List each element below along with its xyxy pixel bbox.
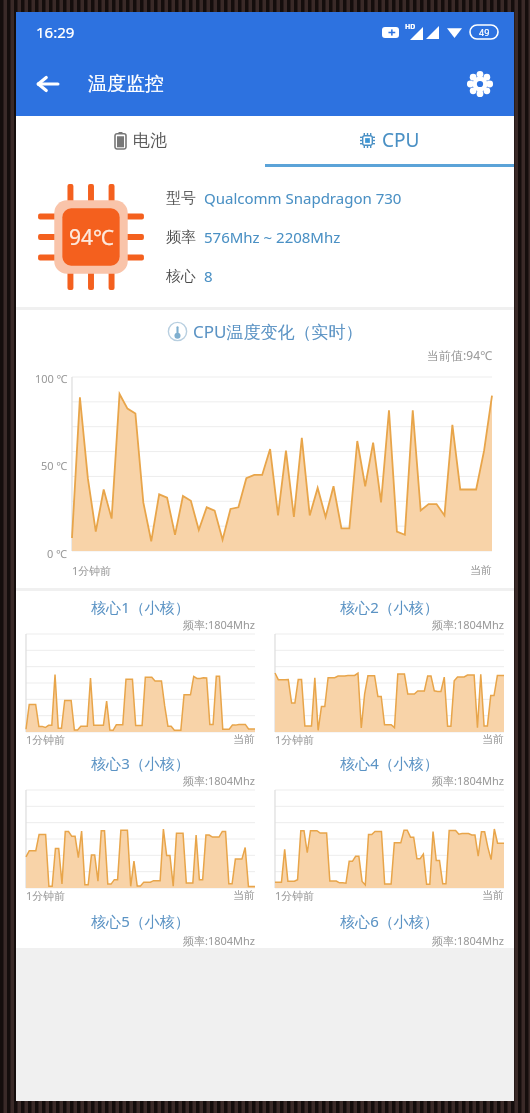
staticText: 当前 — [482, 732, 504, 746]
staticText: 频率:1804Mhz — [275, 773, 504, 788]
staticText: 电池 — [133, 130, 167, 151]
staticText: 频率:1804Mhz — [275, 617, 504, 632]
staticText: 温度监控 — [88, 72, 164, 96]
staticText: 当前 — [233, 732, 255, 746]
staticText: 核心4（小核） — [275, 753, 504, 773]
staticText: 16:29 — [36, 22, 75, 42]
button[interactable]: Settings — [456, 60, 504, 108]
staticText: 频率:1804Mhz — [26, 933, 255, 948]
staticText: 1分钟前 — [26, 888, 66, 903]
staticText: 频率:1804Mhz — [26, 773, 255, 788]
staticText: 1分钟前 — [26, 732, 66, 747]
staticText: 50 ℃ — [41, 458, 68, 473]
staticText: 当前 — [470, 563, 492, 577]
staticText: 1分钟前 — [275, 888, 315, 903]
staticText: 49 — [479, 26, 490, 38]
staticText: 型号 — [166, 189, 196, 208]
staticText: 0 ℃ — [47, 546, 68, 561]
staticText: 94℃ — [69, 223, 114, 252]
button[interactable]: Back — [24, 60, 72, 108]
staticText: 频率:1804Mhz — [26, 617, 255, 632]
staticText: 1分钟前 — [275, 732, 315, 747]
staticText: 100 ℃ — [35, 371, 68, 386]
staticText: 频率 — [166, 228, 196, 247]
staticText: 1分钟前 — [72, 563, 112, 578]
staticText: HD — [405, 22, 416, 32]
staticText: 当前 — [233, 888, 255, 902]
button[interactable]: 电池 — [16, 116, 265, 164]
staticText: 当前 — [482, 888, 504, 902]
staticText: CPU温度变化（实时） — [193, 320, 363, 343]
staticText: 核心5（小核） — [26, 911, 255, 931]
staticText: 8 — [204, 266, 213, 286]
staticText: 核心 — [166, 267, 196, 286]
button[interactable]: CPU — [265, 116, 514, 164]
staticText: 核心2（小核） — [275, 597, 504, 617]
staticText: 576Mhz ~ 2208Mhz — [204, 227, 341, 247]
staticText: CPU — [382, 127, 420, 153]
staticText: 核心3（小核） — [26, 753, 255, 773]
staticText: 当前值:94℃ — [16, 347, 492, 363]
staticText: 核心6（小核） — [275, 911, 504, 931]
staticText: 频率:1804Mhz — [275, 933, 504, 948]
staticText: Qualcomm Snapdragon 730 — [204, 188, 402, 208]
staticText: 核心1（小核） — [26, 597, 255, 617]
